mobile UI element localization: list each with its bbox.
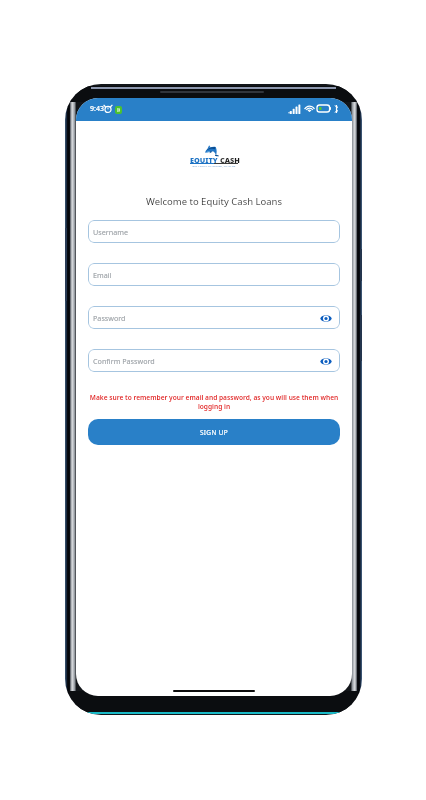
staticText: Make sure to remember your email and pas… xyxy=(88,393,340,411)
staticText: Welcome to Equity Cash Loans xyxy=(76,195,352,208)
button[interactable]: Confirm Password xyxy=(88,349,340,372)
staticText: Password xyxy=(93,313,126,323)
button[interactable]: Password xyxy=(88,306,340,329)
button[interactable]: Email xyxy=(88,263,340,286)
staticText: GET LOANS ANYWHERE, ANYTIME xyxy=(169,165,259,168)
button[interactable]: SIGN UP xyxy=(88,419,340,445)
staticText: SIGN UP xyxy=(200,428,228,437)
staticText: Username xyxy=(93,227,128,237)
button[interactable]: Show password xyxy=(320,312,332,324)
staticText: EQUITY xyxy=(190,155,218,165)
button[interactable]: Username xyxy=(88,220,340,243)
staticText: CASH xyxy=(220,155,240,165)
button[interactable]: Show password xyxy=(320,355,332,367)
staticText: Confirm Password xyxy=(93,356,155,366)
staticText: Email xyxy=(93,270,112,280)
staticText: 9:43 xyxy=(90,104,104,114)
